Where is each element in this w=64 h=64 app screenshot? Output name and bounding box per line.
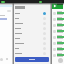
button[interactable] xyxy=(14,41,50,46)
button[interactable] xyxy=(14,11,50,16)
button[interactable] xyxy=(14,46,50,51)
button[interactable] xyxy=(14,16,50,21)
button[interactable] xyxy=(14,26,50,31)
button[interactable] xyxy=(14,36,50,41)
button[interactable] xyxy=(52,22,64,28)
button[interactable]: Back xyxy=(0,58,3,61)
button[interactable] xyxy=(52,10,64,16)
button[interactable] xyxy=(14,31,50,36)
button[interactable] xyxy=(52,52,64,58)
button[interactable] xyxy=(52,28,64,34)
button[interactable] xyxy=(52,46,64,52)
button[interactable] xyxy=(14,51,50,56)
button[interactable] xyxy=(14,21,50,26)
button[interactable] xyxy=(52,40,64,46)
button[interactable]: Add xyxy=(58,58,63,63)
button[interactable] xyxy=(52,34,64,40)
button[interactable] xyxy=(52,16,64,22)
button[interactable]: Play video xyxy=(52,2,63,9)
button[interactable] xyxy=(15,57,49,62)
button[interactable]: Menu xyxy=(7,10,11,12)
